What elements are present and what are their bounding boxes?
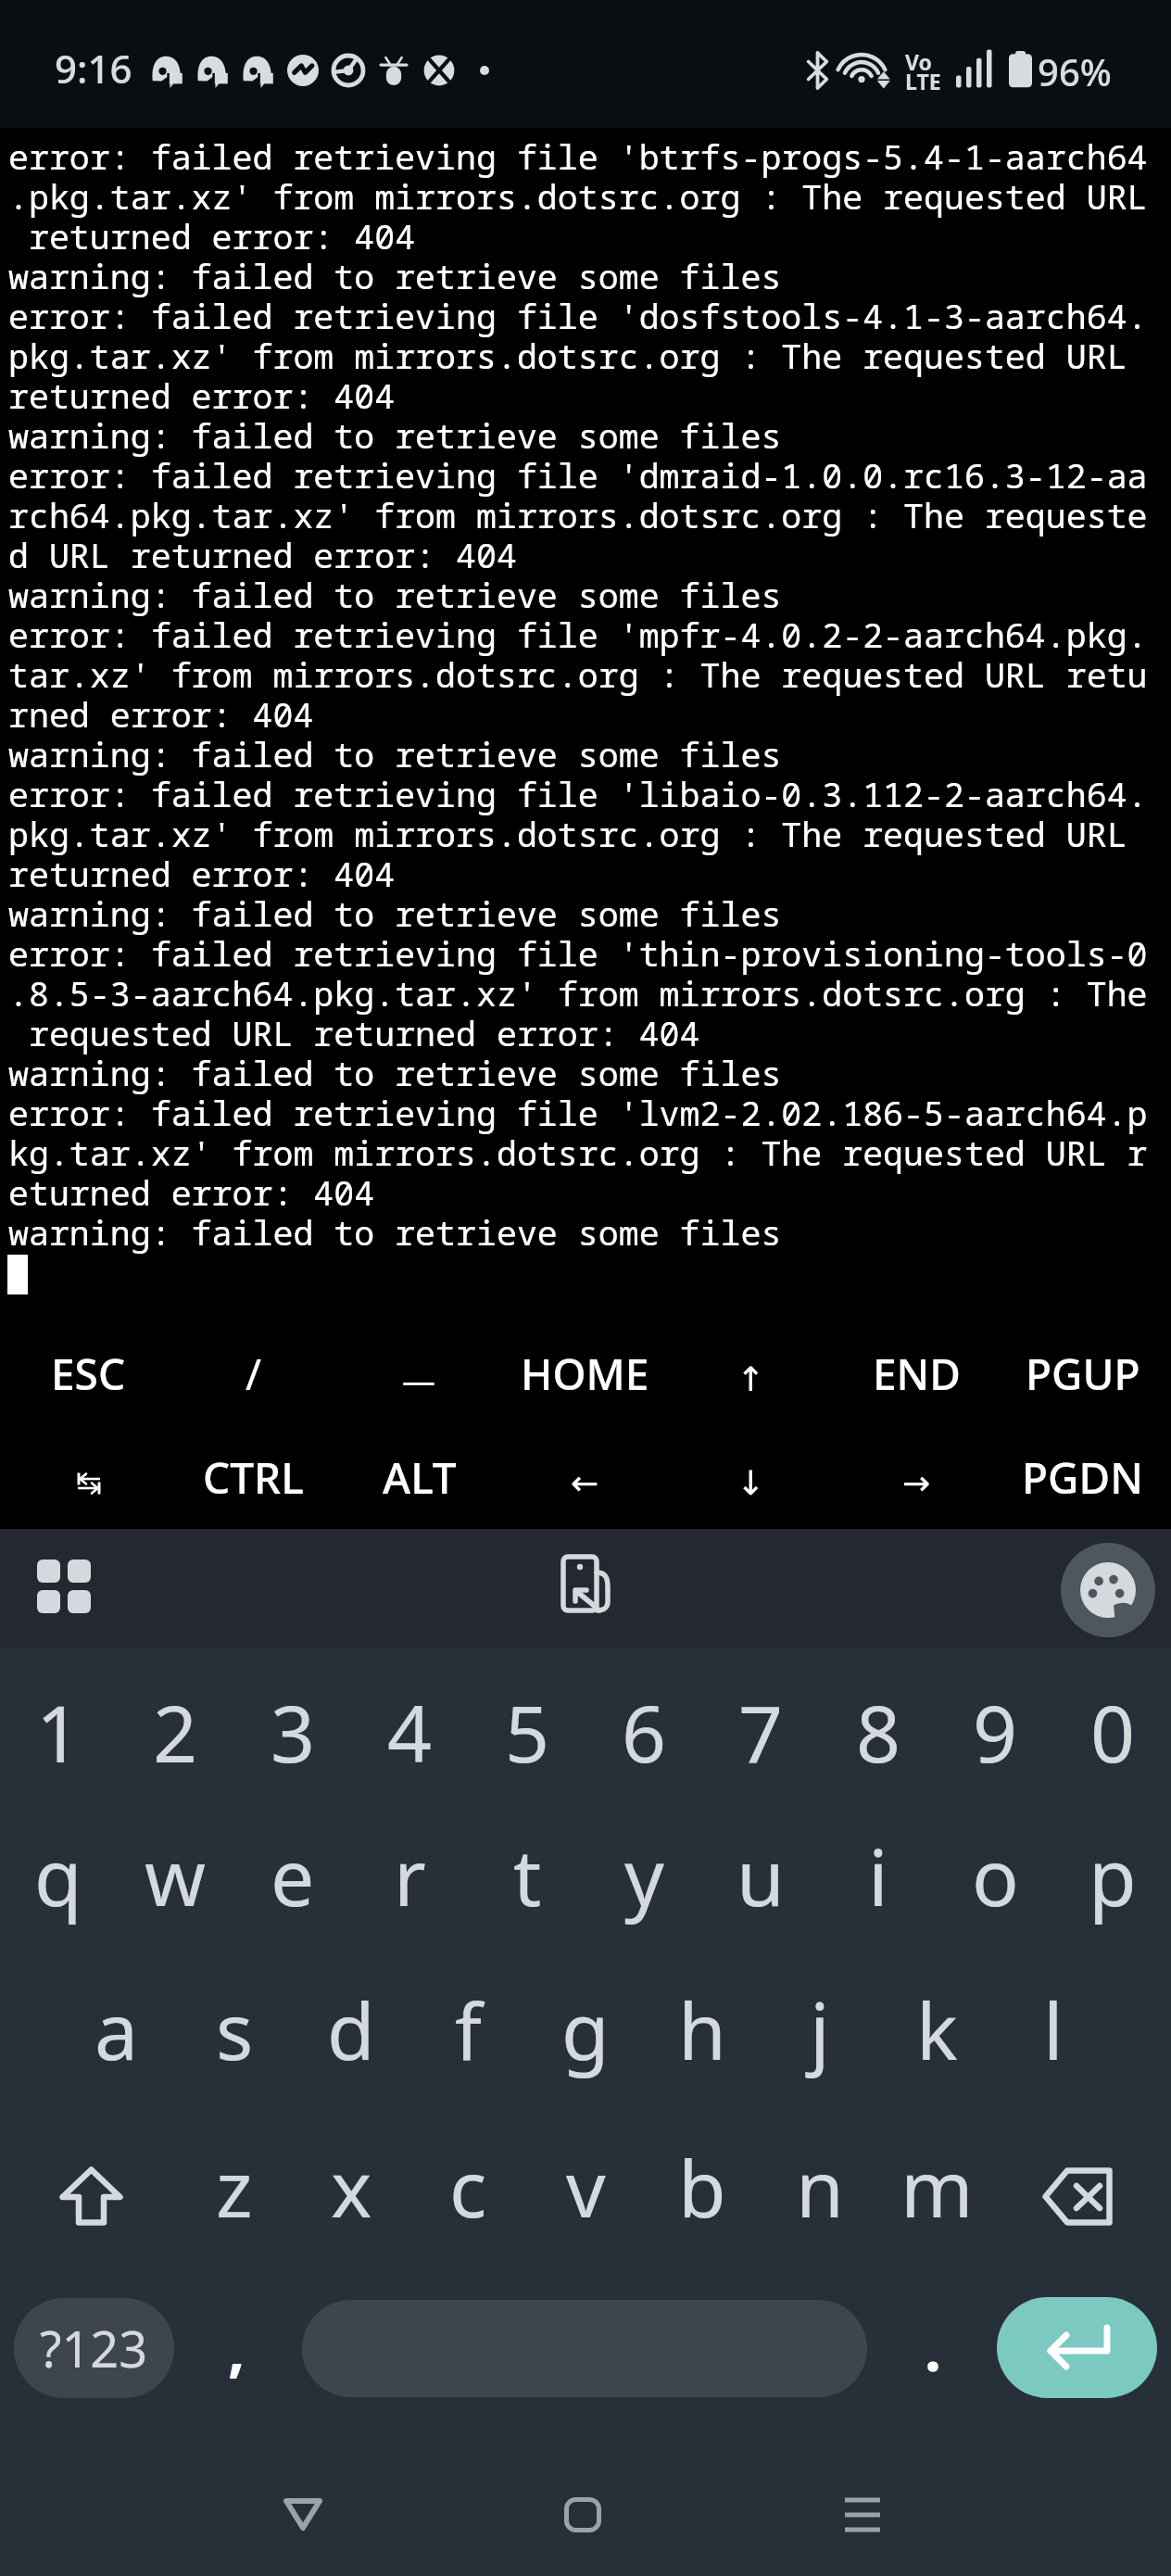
staticText: z [216, 2134, 253, 2240]
button[interactable]: q [0, 1818, 117, 1933]
staticText: j [810, 1976, 830, 2082]
button[interactable]: Backspace [989, 2129, 1165, 2244]
staticText: rned error: 404 [8, 696, 314, 736]
staticText: .8.5-3-aarch64.pkg.tar.xz' from mirrors.… [8, 975, 1148, 1015]
staticText: warning: failed to retrieve some files [8, 576, 782, 616]
button[interactable]: ALT [336, 1426, 502, 1528]
button[interactable]: x [293, 2129, 409, 2244]
button[interactable]: 2 [117, 1674, 233, 1789]
button[interactable]: 8 [820, 1674, 937, 1789]
button[interactable]: END [834, 1325, 1000, 1421]
button[interactable]: y [585, 1818, 702, 1933]
button[interactable]: a [58, 1972, 175, 2087]
staticText: — [402, 1357, 436, 1403]
button[interactable]: o [937, 1818, 1053, 1933]
button[interactable]: Home [509, 2442, 657, 2576]
button[interactable]: Space [302, 2300, 867, 2397]
button[interactable]: i [820, 1818, 937, 1933]
button[interactable]: ← [502, 1426, 668, 1528]
staticText: 2 [153, 1679, 198, 1785]
button[interactable]: . [875, 2298, 990, 2398]
staticText: d [327, 1976, 375, 2082]
staticText: y [624, 1823, 664, 1928]
button[interactable]: v [527, 2129, 644, 2244]
staticText: r [394, 1823, 426, 1928]
button[interactable]: b [644, 2129, 761, 2244]
staticText: d URL returned error: 404 [8, 537, 517, 576]
button[interactable]: ↑ [668, 1325, 834, 1421]
button[interactable]: / [170, 1325, 336, 1421]
staticText: CTRL [203, 1448, 304, 1507]
button[interactable]: n [762, 2129, 878, 2244]
button[interactable]: p [1054, 1818, 1171, 1933]
button[interactable]: f [409, 1972, 526, 2087]
staticText: returned error: 404 [8, 377, 396, 417]
button[interactable]: w [117, 1818, 233, 1933]
button[interactable]: 6 [585, 1674, 702, 1789]
button[interactable]: j [762, 1972, 878, 2087]
button[interactable]: g [527, 1972, 644, 2087]
button[interactable]: Theme [1061, 1543, 1155, 1637]
button[interactable]: → [834, 1426, 1000, 1528]
button[interactable]: Enter [997, 2297, 1157, 2398]
button[interactable]: Shift [3, 2129, 179, 2244]
staticText: 8 [856, 1679, 901, 1785]
staticText: u [737, 1823, 785, 1928]
staticText: warning: failed to retrieve some files [8, 736, 782, 776]
staticText: 7 [738, 1679, 784, 1785]
staticText: rch64.pkg.tar.xz' from mirrors.dotsrc.or… [8, 497, 1148, 537]
staticText: ← [571, 1464, 599, 1503]
button[interactable]: 0 [1054, 1674, 1171, 1789]
button[interactable]: ↓ [668, 1426, 834, 1528]
button[interactable]: 3 [234, 1674, 351, 1789]
staticText: 6 [622, 1679, 667, 1785]
button[interactable]: h [644, 1972, 761, 2087]
button[interactable]: c [409, 2129, 526, 2244]
staticText: 9 [973, 1679, 1018, 1785]
button[interactable]: PGDN [1000, 1426, 1165, 1528]
button[interactable]: Recent apps [788, 2442, 937, 2576]
button[interactable]: 5 [469, 1674, 585, 1789]
button[interactable]: HOME [502, 1325, 668, 1421]
button[interactable]: z [176, 2129, 293, 2244]
button[interactable]: s [176, 1972, 293, 2087]
button[interactable]: Back [229, 2442, 377, 2576]
button[interactable]: l [995, 1972, 1112, 2087]
button[interactable]: Tab [6, 1426, 170, 1528]
staticText: error: failed retrieving file 'btrfs-pro… [8, 138, 1148, 178]
staticText: 5 [505, 1679, 550, 1785]
button[interactable]: One-handed mode [547, 1545, 624, 1623]
button[interactable]: 7 [702, 1674, 819, 1789]
staticText: pkg.tar.xz' from mirrors.dotsrc.org : Th… [8, 337, 1127, 377]
button[interactable]: 4 [351, 1674, 468, 1789]
button[interactable]: d [293, 1972, 409, 2087]
button[interactable]: e [234, 1818, 351, 1933]
button[interactable]: PGUP [1000, 1325, 1165, 1421]
staticText: ?123 [40, 2314, 148, 2382]
button[interactable]: CTRL [170, 1426, 336, 1528]
staticText: HOME [521, 1345, 649, 1403]
button[interactable]: — [336, 1325, 502, 1421]
staticText: ESC [51, 1345, 126, 1403]
button[interactable]: ESC [6, 1325, 170, 1421]
staticText: END [873, 1345, 961, 1403]
staticText: l [1043, 1976, 1064, 2082]
button[interactable]: m [878, 2129, 995, 2244]
staticText: 1 [36, 1679, 82, 1785]
button[interactable]: r [351, 1818, 468, 1933]
staticText: error: failed retrieving file 'mpfr-4.0.… [8, 616, 1148, 656]
button[interactable]: u [702, 1818, 819, 1933]
staticText: s [216, 1976, 254, 2082]
button[interactable]: , [179, 2298, 295, 2398]
staticText: h [678, 1976, 726, 2082]
button[interactable]: ?123 [14, 2298, 174, 2398]
staticText: ↑ [737, 1360, 765, 1399]
button[interactable]: k [878, 1972, 995, 2087]
button[interactable]: Keyboard layouts [25, 1547, 103, 1625]
button[interactable]: t [469, 1818, 585, 1933]
staticText: p [1089, 1823, 1137, 1928]
button[interactable]: 9 [937, 1674, 1053, 1789]
staticText: .pkg.tar.xz' from mirrors.dotsrc.org : T… [8, 178, 1148, 218]
staticText: q [34, 1823, 82, 1928]
button[interactable]: 1 [0, 1674, 117, 1789]
